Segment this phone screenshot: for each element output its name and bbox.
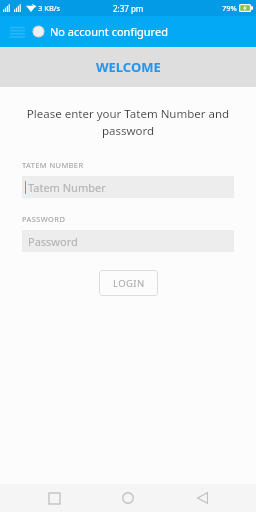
staticText: Tatem Number	[28, 180, 106, 195]
staticText: Please enter your Tatem Number and passw…	[14, 106, 242, 139]
staticText: 2:37 pm	[113, 3, 144, 14]
button[interactable]: LOGIN	[99, 270, 158, 296]
button[interactable]: Password	[22, 230, 234, 252]
staticText: WELCOME	[96, 58, 161, 76]
button[interactable]: Home	[108, 484, 148, 512]
button[interactable]: Recent apps	[34, 484, 74, 512]
button[interactable]: Back	[182, 484, 222, 512]
staticText: LOGIN	[113, 277, 145, 290]
staticText: TATEM NUMBER	[22, 160, 84, 170]
button[interactable]: Open navigation menu	[6, 21, 28, 43]
staticText: Password	[28, 234, 78, 249]
staticText: No account configured	[50, 24, 168, 39]
button[interactable]: Tatem Number	[22, 176, 234, 198]
staticText: 3 KB/s	[38, 3, 61, 13]
staticText: PASSWORD	[22, 214, 66, 224]
staticText: 79%	[222, 3, 237, 13]
button[interactable]: No account configured	[33, 24, 168, 39]
